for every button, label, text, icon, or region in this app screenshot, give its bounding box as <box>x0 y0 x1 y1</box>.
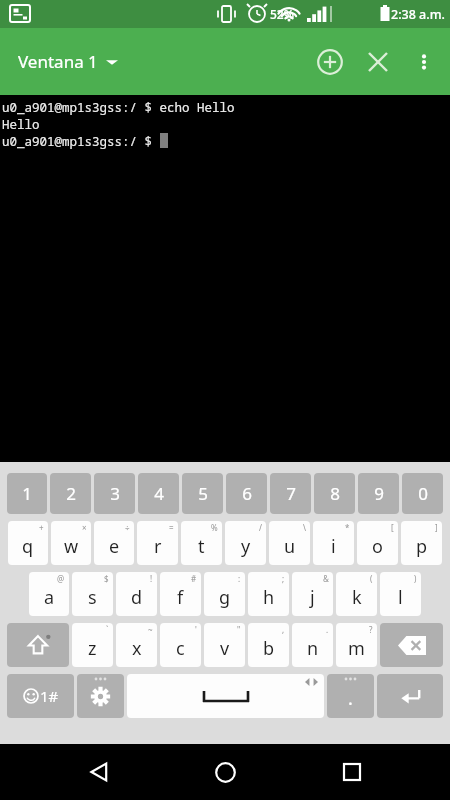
staticText: x <box>132 636 142 661</box>
button[interactable]: + <box>8 521 48 565</box>
button[interactable]: ; <box>248 572 289 616</box>
staticText: s <box>88 585 97 610</box>
button[interactable]: Shift <box>7 623 69 667</box>
button[interactable]: ` <box>72 623 113 667</box>
staticText: o <box>372 534 383 559</box>
button[interactable]: Backspace <box>380 623 443 667</box>
button[interactable]: , <box>248 623 289 667</box>
button[interactable]: / <box>225 521 266 565</box>
button[interactable]: Recent apps <box>324 744 380 800</box>
staticText: m <box>348 636 365 661</box>
staticText: 0 <box>418 482 428 505</box>
staticText: 1# <box>40 686 59 706</box>
button[interactable]: 9 <box>358 473 399 514</box>
staticText: $ <box>104 573 109 584</box>
staticText: 5 <box>198 482 208 505</box>
staticText: 8 <box>330 482 340 505</box>
button[interactable]: 5 <box>182 473 223 514</box>
button[interactable]: × <box>51 521 91 565</box>
button[interactable]: Keyboard settings <box>77 674 124 718</box>
button[interactable]: Home <box>197 744 253 800</box>
staticText: b <box>263 636 275 661</box>
staticText: + <box>39 522 44 533</box>
staticText: \ <box>303 522 306 533</box>
staticText: * <box>345 522 350 533</box>
staticText: = <box>169 522 174 533</box>
button[interactable]: ) <box>380 572 421 616</box>
button[interactable]: 6 <box>226 473 267 514</box>
button[interactable]: & <box>292 572 333 616</box>
button[interactable]: # <box>160 572 201 616</box>
staticText: e <box>109 534 120 559</box>
button[interactable]: Back <box>71 744 127 800</box>
button[interactable]: 3 <box>94 473 135 514</box>
staticText: 1 <box>22 482 32 505</box>
button[interactable]: Symbols and emoji <box>7 674 74 718</box>
button[interactable]: ~ <box>116 623 157 667</box>
staticText: t <box>198 534 205 559</box>
staticText: u <box>284 534 296 559</box>
button[interactable]: ÷ <box>94 521 134 565</box>
button[interactable]: ! <box>116 572 157 616</box>
button[interactable]: @ <box>29 572 69 616</box>
button[interactable]: Ventana 1 <box>0 44 128 79</box>
staticText: : <box>238 573 241 584</box>
staticText: u0_a901@mp1s3gss:/ $ <box>2 133 160 150</box>
button[interactable]: ( <box>336 572 377 616</box>
button[interactable]: u0_a901@mp1s3gss:/ $ echo Hello <box>0 95 450 462</box>
staticText: ? <box>369 624 373 635</box>
staticText: # <box>191 573 197 584</box>
staticText: j <box>310 585 315 610</box>
staticText: z <box>88 636 97 661</box>
staticText: × <box>82 522 87 533</box>
button[interactable]: " <box>204 623 245 667</box>
staticText: w <box>64 534 79 559</box>
button[interactable]: . <box>327 674 374 718</box>
staticText: c <box>176 636 185 661</box>
staticText: . <box>326 624 329 635</box>
button[interactable]: 1 <box>7 473 47 514</box>
button[interactable]: Enter <box>377 674 443 718</box>
staticText: Ventana 1 <box>18 50 98 73</box>
staticText: & <box>323 573 329 584</box>
staticText: u0_a901@mp1s3gss:/ $ echo Hello <box>2 99 235 116</box>
button[interactable]: New window <box>306 38 354 86</box>
button[interactable]: % <box>181 521 222 565</box>
staticText: ` <box>106 624 109 635</box>
staticText: 6 <box>242 482 252 505</box>
button[interactable]: ? <box>336 623 377 667</box>
staticText: 4 <box>154 482 164 505</box>
staticText: a <box>44 585 55 610</box>
button[interactable]: ' <box>160 623 201 667</box>
button[interactable]: : <box>204 572 245 616</box>
button[interactable]: 7 <box>270 473 311 514</box>
button[interactable]: ] <box>401 521 442 565</box>
button[interactable]: 0 <box>402 473 443 514</box>
staticText: 2:38 a.m. <box>391 6 445 23</box>
staticText: ] <box>435 522 438 533</box>
staticText: ! <box>150 573 153 584</box>
button[interactable]: 8 <box>314 473 355 514</box>
button[interactable]: * <box>313 521 354 565</box>
staticText: @ <box>57 573 65 584</box>
button[interactable]: Space <box>127 674 324 718</box>
button[interactable]: $ <box>72 572 113 616</box>
button[interactable]: \ <box>269 521 310 565</box>
staticText: d <box>131 585 143 610</box>
staticText: g <box>219 585 231 610</box>
staticText: ) <box>414 573 417 584</box>
button[interactable]: Close window <box>354 38 402 86</box>
staticText: y <box>241 534 251 559</box>
staticText: ~ <box>148 624 153 635</box>
button[interactable]: [ <box>357 521 398 565</box>
button[interactable]: . <box>292 623 333 667</box>
staticText: / <box>259 522 262 533</box>
button[interactable]: More options <box>402 40 446 84</box>
staticText: ; <box>282 573 285 584</box>
staticText: 52% <box>270 6 294 22</box>
staticText: ' <box>195 624 197 635</box>
staticText: , <box>282 624 285 635</box>
button[interactable]: 2 <box>50 473 91 514</box>
button[interactable]: 4 <box>138 473 179 514</box>
button[interactable]: = <box>137 521 178 565</box>
